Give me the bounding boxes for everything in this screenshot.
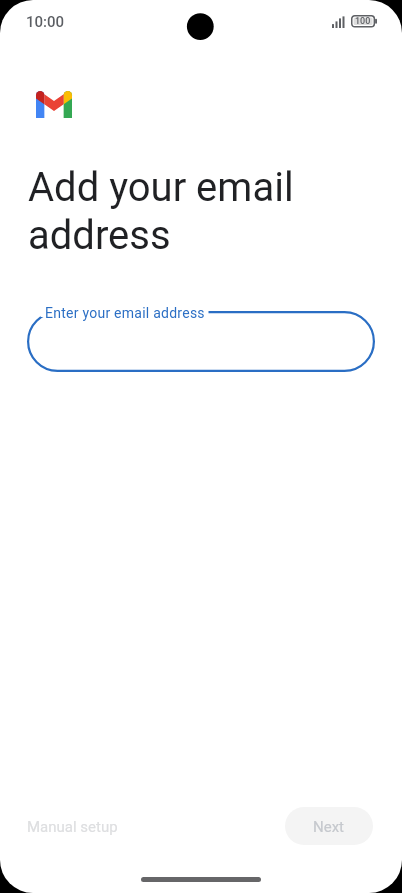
button[interactable]: Manual setup xyxy=(16,807,129,845)
staticText: Add your email address xyxy=(28,164,294,258)
staticText: 100 xyxy=(355,16,371,27)
button[interactable]: Enter your email address xyxy=(27,311,375,372)
other: Mobile signal xyxy=(332,16,345,28)
staticText: Next xyxy=(313,818,345,836)
other: Battery 100 percent xyxy=(351,15,377,28)
button[interactable]: Next xyxy=(285,807,373,845)
staticText: Enter your email address xyxy=(45,305,205,321)
staticText: Manual setup xyxy=(27,818,118,836)
staticText: 10:00 xyxy=(26,13,65,31)
